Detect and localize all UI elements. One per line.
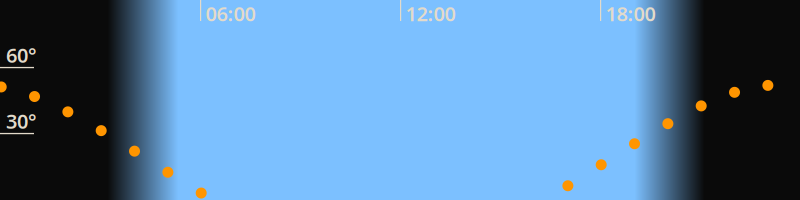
staticText: 60° [6, 42, 37, 68]
staticText: 06:00 [205, 0, 255, 27]
staticText: 30° [6, 108, 37, 134]
staticText: 18:00 [605, 0, 655, 27]
staticText: 12:00 [405, 0, 455, 27]
